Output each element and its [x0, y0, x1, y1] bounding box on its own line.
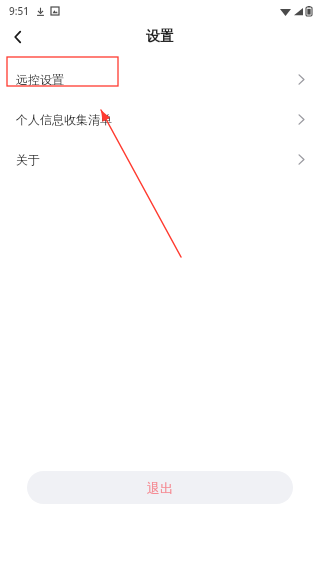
- staticText: 关于: [16, 152, 40, 167]
- staticText: 退出: [147, 480, 173, 496]
- staticText: 远控设置: [16, 72, 64, 87]
- button[interactable]: 远控设置: [0, 59, 320, 99]
- staticText: 9:51: [9, 4, 29, 18]
- button[interactable]: 退出: [27, 471, 293, 504]
- button[interactable]: 个人信息收集清单: [0, 99, 320, 139]
- staticText: 个人信息收集清单: [16, 112, 112, 127]
- button[interactable]: 关于: [0, 139, 320, 179]
- staticText: 设置: [146, 28, 174, 46]
- button[interactable]: Back: [0, 22, 36, 52]
